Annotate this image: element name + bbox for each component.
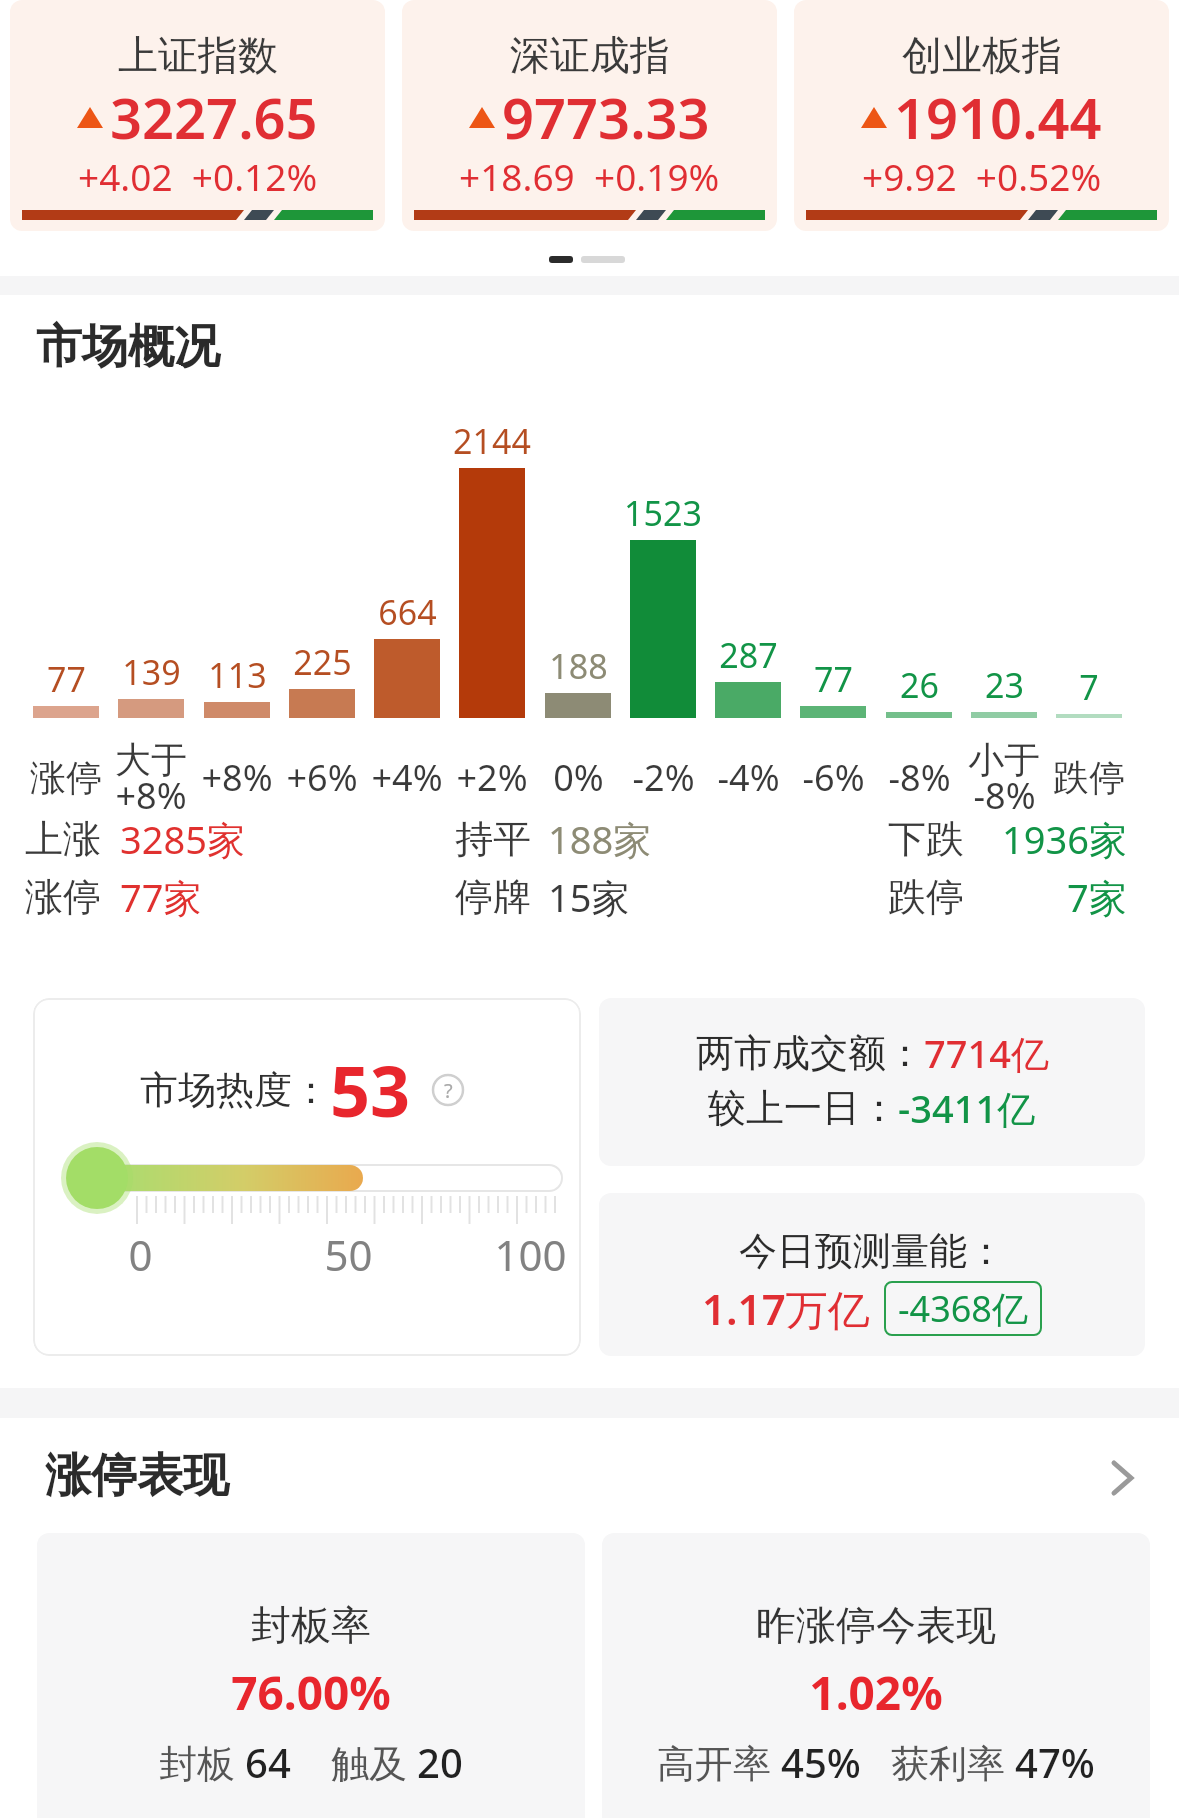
staticText: 跌停 [1053,755,1125,800]
staticText: ? [444,1077,453,1104]
staticText: 市场热度： [140,1066,330,1114]
staticText: 15家 [548,871,630,923]
button[interactable]: 创业板指 [794,0,1169,231]
staticText: -8% [973,771,1036,820]
staticText: -4368亿 [898,1284,1028,1333]
staticText: 3227.65 [110,79,318,155]
staticText: 225 [293,639,352,685]
staticText: +8% [201,753,273,802]
staticText: 市场概况 [36,318,220,376]
staticText: 涨停 [30,755,102,800]
staticText: 下跌 [888,815,964,863]
staticText: 77 [47,656,86,702]
staticText: 7家 [1067,871,1127,923]
staticText: 封板 [159,1736,245,1788]
staticText: 涨停表现 [45,1447,229,1505]
staticText: 深证成指 [510,30,670,80]
staticText: +18.69 +0.19% [459,151,720,201]
staticText: 7714亿 [924,1027,1049,1079]
staticText: 涨停 [25,873,101,921]
staticText: 50 [324,1226,373,1283]
staticText: 113 [208,652,267,698]
staticText: 1.02% [809,1661,943,1724]
staticText: 2144 [453,418,531,464]
button[interactable] [599,1193,1145,1356]
button[interactable] [599,998,1145,1166]
staticText: 大于 [115,737,187,782]
staticText: 上证指数 [118,30,278,80]
staticText: 9773.33 [502,79,710,155]
staticText: 较上一日： [708,1084,898,1132]
staticText: 26 [900,662,939,708]
staticText: 45% [781,1735,861,1789]
staticText: 47% [1015,1735,1095,1789]
staticText: +9.92 +0.52% [862,151,1102,201]
staticText: 今日预测量能： [739,1227,1005,1275]
staticText: -3411亿 [898,1082,1036,1134]
staticText: 持平 [455,815,531,863]
staticText: 664 [378,589,437,635]
staticText: 3285家 [120,813,245,865]
staticText: 上涨 [25,815,101,863]
staticText: 76.00% [231,1661,391,1724]
staticText: +2% [456,753,528,802]
staticText: 188 [549,643,608,689]
button[interactable] [0,1440,1179,1512]
button[interactable] [37,1533,585,1818]
staticText: 1936家 [1002,813,1127,865]
button[interactable]: 深证成指 [402,0,777,231]
staticText: 23 [985,662,1024,708]
staticText: 100 [494,1226,567,1283]
button[interactable] [33,998,581,1356]
staticText: -2% [632,753,695,802]
staticText: 昨涨停今表现 [756,1600,996,1650]
staticText: 创业板指 [902,30,1062,80]
staticText: 高开率 [657,1736,781,1788]
staticText: +4% [371,753,443,802]
staticText: 77家 [120,871,202,923]
staticText: 1910.44 [894,79,1102,155]
staticText: 跌停 [888,873,964,921]
staticText: 77 [814,656,853,702]
staticText: 0 [128,1226,153,1283]
staticText: +4.02 +0.12% [78,151,318,201]
staticText: 0% [553,753,604,802]
button[interactable]: 上证指数 [10,0,385,231]
staticText: 小于 [968,737,1040,782]
staticText: 获利率 [891,1736,1015,1788]
staticText: -6% [802,753,865,802]
staticText: 封板率 [251,1600,371,1650]
staticText: -4% [717,753,780,802]
staticText: 停牌 [455,873,531,921]
staticText: 139 [122,649,181,695]
staticText: 1.17万亿 [702,1280,870,1337]
staticText: 64 [245,1735,291,1789]
staticText: 触及 [331,1736,417,1788]
staticText: 两市成交额： [696,1029,924,1077]
staticText: 53 [330,1042,411,1137]
staticText: +6% [286,753,358,802]
staticText: 20 [417,1735,463,1789]
button[interactable] [602,1533,1150,1818]
staticText: 7 [1079,664,1099,710]
staticText: -8% [888,753,951,802]
staticText: 287 [719,632,778,678]
staticText: +8% [115,771,187,820]
staticText: 188家 [548,813,652,865]
staticText: 1523 [624,490,702,536]
